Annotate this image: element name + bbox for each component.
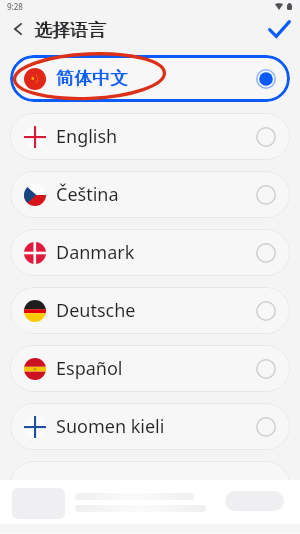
staticText: 简体中文 [57, 67, 129, 90]
button[interactable]: 简体中文 [10, 55, 290, 102]
button[interactable]: Confirm [265, 15, 293, 43]
button[interactable]: Čeština [10, 171, 290, 218]
staticText: Deutsche [56, 298, 136, 323]
staticText: Suomen kieli [56, 414, 165, 439]
staticText: Čeština [56, 182, 119, 207]
staticText: 选择语言 [35, 19, 107, 42]
button[interactable]: Danmark [10, 229, 290, 276]
staticText: 简体中文 [56, 67, 128, 90]
staticText: Español [56, 356, 123, 381]
button[interactable]: Suomen kieli [10, 403, 290, 450]
button[interactable]: Back [5, 16, 31, 42]
staticText: English [56, 124, 118, 149]
button[interactable]: Deutsche [10, 287, 290, 334]
staticText: 9:28 [7, 1, 23, 12]
button[interactable]: English [10, 113, 290, 160]
button[interactable]: Español [10, 345, 290, 392]
staticText: 选择语言 [34, 19, 106, 42]
staticText: Danmark [56, 240, 135, 265]
